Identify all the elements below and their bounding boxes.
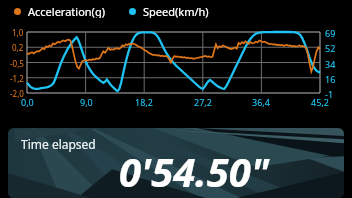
staticText: -0,5 <box>10 58 24 69</box>
staticText: Speed(km/h) <box>143 4 209 18</box>
staticText: 27,2 <box>194 96 212 108</box>
staticText: 0,2 <box>12 42 24 53</box>
staticText: Acceleration(g) <box>28 4 105 18</box>
staticText: 34 <box>325 58 336 70</box>
staticText: Time elapsed <box>21 136 96 152</box>
staticText: 1,0 <box>12 27 24 38</box>
staticText: 36,4 <box>252 96 270 108</box>
staticText: -2,0 <box>10 88 24 99</box>
staticText: 0'54.50" <box>119 144 269 198</box>
staticText: 9,0 <box>80 96 93 108</box>
staticText: 0,0 <box>21 96 34 108</box>
staticText: -1 <box>325 88 334 100</box>
staticText: 18,2 <box>135 96 153 108</box>
staticText: 45,2 <box>311 96 329 108</box>
staticText: -1,2 <box>10 73 24 84</box>
staticText: 52 <box>325 42 336 54</box>
button[interactable]: Time elapsed <box>8 128 344 198</box>
staticText: 16 <box>325 73 336 85</box>
staticText: 69 <box>325 27 336 39</box>
